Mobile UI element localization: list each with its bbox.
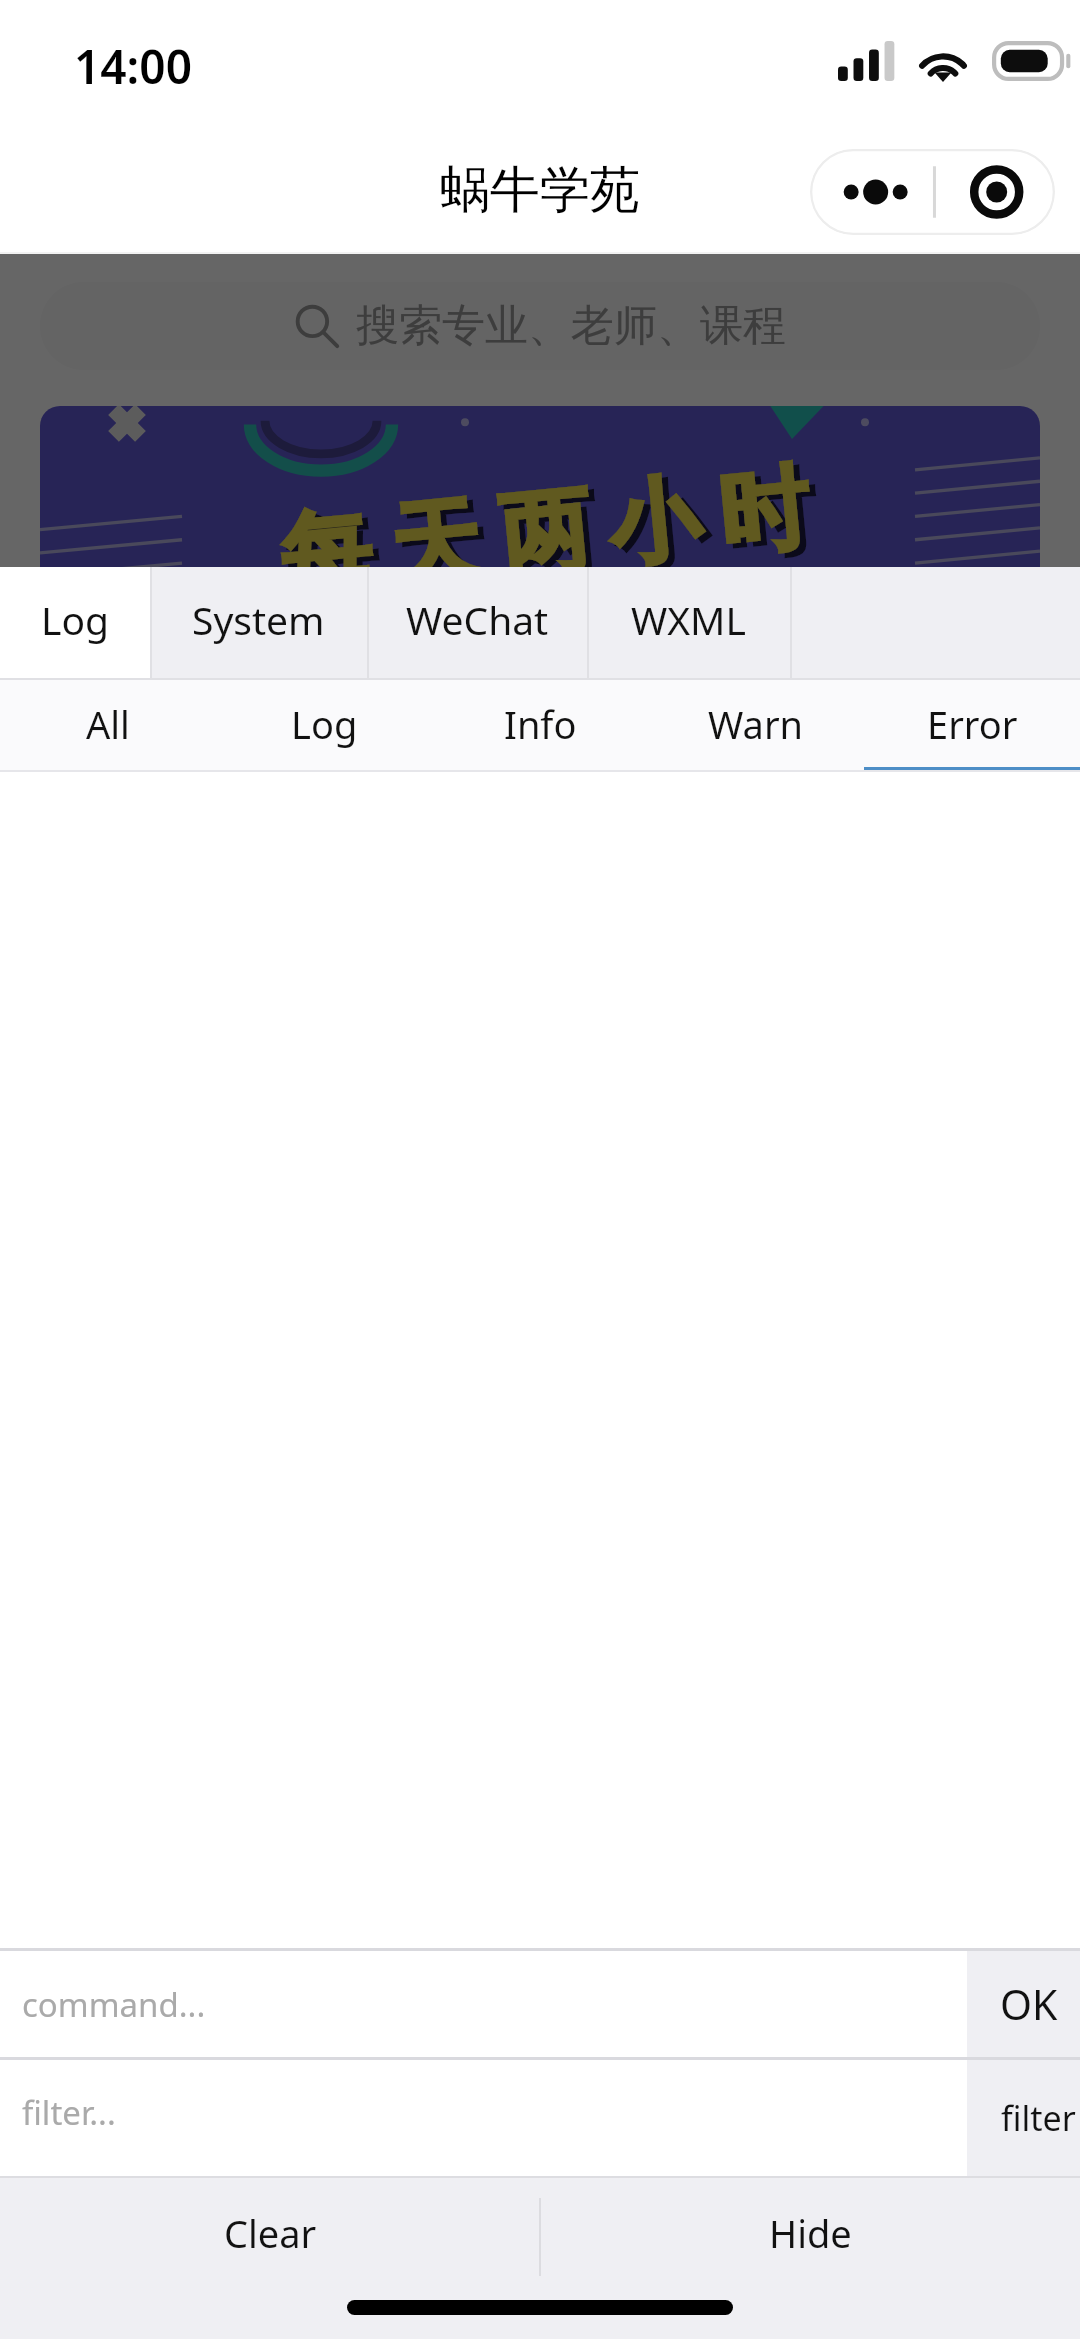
- staticText: 蜗牛学苑: [440, 159, 640, 222]
- button[interactable]: command...: [22, 1951, 967, 2057]
- staticText: All: [86, 698, 130, 750]
- staticText: 学透专业技行: [247, 569, 914, 745]
- button[interactable]: filter...: [22, 2060, 967, 2176]
- button[interactable]: WeChat: [367, 567, 587, 680]
- staticText: 每天两小时: [272, 454, 831, 619]
- button[interactable]: Info: [432, 680, 648, 772]
- staticText: filter...: [22, 2090, 116, 2135]
- button[interactable]: WXML: [587, 567, 790, 680]
- button[interactable]: Hide: [540, 2178, 1080, 2296]
- staticText: System: [192, 593, 325, 646]
- staticText: Error: [927, 698, 1018, 750]
- button[interactable]: filter: [967, 2060, 1080, 2176]
- staticText: WXML: [631, 593, 746, 646]
- button[interactable]: Clear: [0, 2178, 540, 2296]
- staticText: 学透专业技行: [240, 565, 908, 740]
- staticText: 14:00: [74, 35, 192, 98]
- button[interactable]: More options and close mini program: [810, 149, 1055, 235]
- staticText: OK: [1000, 1976, 1058, 2032]
- staticText: 每天两小时: [266, 450, 824, 615]
- button[interactable]: Error: [864, 680, 1080, 772]
- button[interactable]: Log: [0, 567, 150, 680]
- staticText: Hide: [769, 2207, 852, 2259]
- staticText: Log: [41, 593, 110, 646]
- staticText: Warn: [708, 698, 804, 750]
- staticText: WeChat: [406, 593, 549, 646]
- staticText: filter: [1001, 2095, 1076, 2141]
- button[interactable]: Warn: [648, 680, 864, 772]
- button[interactable]: All: [0, 680, 216, 772]
- staticText: Info: [504, 698, 577, 750]
- button[interactable]: System: [150, 567, 367, 680]
- button[interactable]: OK: [967, 1951, 1080, 2057]
- staticText: command...: [22, 1982, 206, 2027]
- staticText: Log: [291, 698, 358, 750]
- button[interactable]: Log: [216, 680, 432, 772]
- staticText: 搜索专业、老师、课程: [356, 299, 786, 353]
- staticText: Clear: [224, 2207, 317, 2259]
